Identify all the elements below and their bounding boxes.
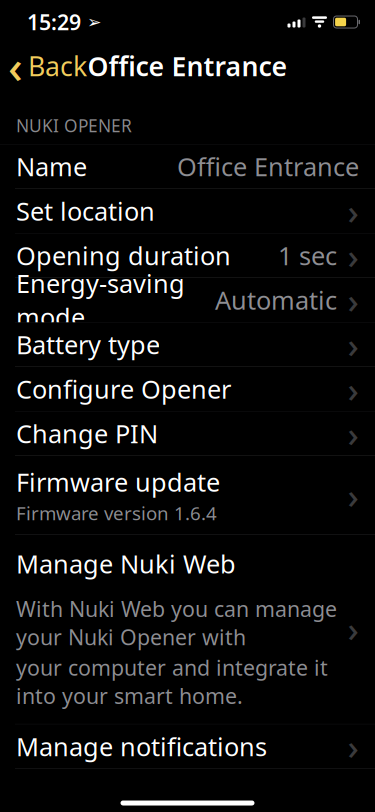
staticText: Change PIN (16, 417, 158, 450)
staticText: Office Entrance (177, 150, 359, 183)
staticText: › (347, 366, 358, 412)
button[interactable]: Manage Nuki Web (0, 535, 375, 724)
staticText: › (347, 232, 358, 278)
staticText: Manage notifications (16, 730, 267, 763)
staticText: Firmware version 1.6.4 (16, 501, 217, 525)
button[interactable]: Name (0, 144, 375, 188)
button[interactable]: ‹ (0, 32, 87, 100)
staticText: Amazon Alexa (16, 774, 184, 808)
button[interactable]: Energy-saving mode (0, 278, 375, 322)
staticText: Back (28, 48, 87, 84)
button[interactable]: Configure Opener (0, 367, 375, 411)
staticText: › (347, 410, 358, 456)
staticText: Energy-saving mode (16, 266, 185, 334)
staticText: Name (16, 150, 87, 183)
staticText: Opening duration (16, 239, 231, 272)
button[interactable]: Opening duration (0, 233, 375, 277)
button[interactable]: Firmware update (0, 456, 375, 534)
staticText: 1 sec (278, 239, 337, 272)
staticText: › (347, 321, 358, 367)
staticText: Battery type (16, 328, 160, 361)
staticText: 15:29 (27, 8, 81, 36)
staticText: › (347, 277, 358, 323)
staticText: › (347, 188, 358, 234)
staticText: › (347, 605, 358, 651)
button[interactable]: Battery type (0, 322, 375, 366)
button[interactable]: Set location (0, 189, 375, 233)
button[interactable]: Manage notifications (0, 724, 375, 768)
staticText: Manage Nuki Web (16, 547, 236, 580)
staticText: Firmware update (16, 465, 220, 499)
staticText: › (347, 723, 358, 769)
staticText: With Nuki Web you can manage your Nuki O… (16, 595, 337, 651)
button[interactable]: Amazon Alexa (0, 769, 375, 812)
staticText: your computer and integrate it into your… (16, 653, 328, 710)
staticText: › (347, 472, 358, 518)
button[interactable]: Change PIN (0, 411, 375, 455)
staticText: ‹ (8, 36, 23, 96)
staticText: ➢ (81, 12, 102, 32)
staticText: Set location (16, 194, 155, 228)
staticText: NUKI OPENER (16, 114, 132, 137)
staticText: Office Entrance (87, 48, 287, 84)
staticText: Automatic (215, 283, 337, 317)
staticText: Configure Opener (16, 372, 231, 406)
